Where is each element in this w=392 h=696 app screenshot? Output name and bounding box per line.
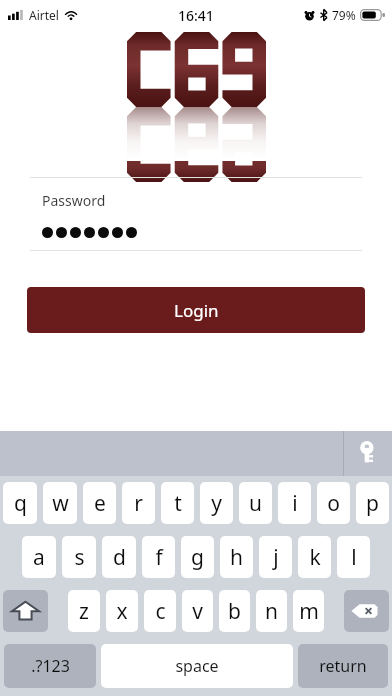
button[interactable]: space [101,644,293,688]
button[interactable]: Login [27,287,365,333]
button[interactable]: l [337,536,370,578]
button[interactable]: Passwords [354,440,382,468]
button[interactable]: q [3,482,37,524]
button[interactable]: a [22,536,56,578]
staticText: x [116,597,128,626]
button[interactable]: f [142,536,175,578]
button[interactable]: b [219,590,250,632]
button[interactable]: v [182,590,213,632]
button[interactable]: w [43,482,77,524]
staticText: c [155,597,166,626]
button[interactable]: x [106,590,138,632]
button[interactable]: return [298,644,388,688]
button[interactable]: r [122,482,155,524]
staticText: l [351,543,357,572]
button[interactable]: d [102,536,136,578]
button[interactable]: .?123 [4,644,96,688]
button[interactable]: h [220,536,253,578]
staticText: o [327,489,340,518]
button[interactable]: Delete [344,590,389,632]
staticText: Airtel [29,7,59,23]
staticText: u [249,489,262,518]
staticText: Login [174,299,219,322]
button[interactable]: o [317,482,350,524]
button[interactable]: j [259,536,292,578]
staticText: k [309,543,321,572]
button[interactable]: e [83,482,116,524]
staticText: j [273,543,279,572]
staticText: s [74,543,85,572]
staticText: w [52,489,69,518]
staticText: q [14,489,27,518]
button[interactable]: g [181,536,214,578]
staticText: a [33,543,45,572]
button[interactable]: Shift [3,590,48,632]
staticText: e [94,489,106,518]
staticText: g [191,543,204,572]
staticText: t [174,489,182,518]
staticText: b [228,597,241,626]
staticText: p [366,489,379,518]
button[interactable]: m [293,590,324,632]
staticText: d [113,543,126,572]
button[interactable]: p [356,482,389,524]
staticText: n [265,597,278,626]
button[interactable]: n [256,590,287,632]
staticText: f [155,543,163,572]
staticText: y [211,489,222,518]
staticText: h [230,543,243,572]
staticText: space [175,655,219,677]
staticText: Password [42,191,106,210]
button[interactable]: k [298,536,331,578]
button[interactable]: t [161,482,194,524]
button[interactable]: y [200,482,233,524]
button[interactable]: z [68,590,100,632]
button[interactable]: u [239,482,272,524]
staticText: return [319,655,367,677]
staticText: i [292,489,298,518]
button[interactable]: c [144,590,176,632]
staticText: r [134,489,143,518]
button[interactable]: i [278,482,311,524]
staticText: v [192,597,203,626]
staticText: z [79,597,89,626]
staticText: m [299,597,319,626]
staticText: 79% [332,7,356,23]
button[interactable]: s [62,536,96,578]
staticText: .?123 [31,655,70,677]
staticText: 16:41 [178,6,214,25]
button[interactable]: Password [30,177,362,251]
